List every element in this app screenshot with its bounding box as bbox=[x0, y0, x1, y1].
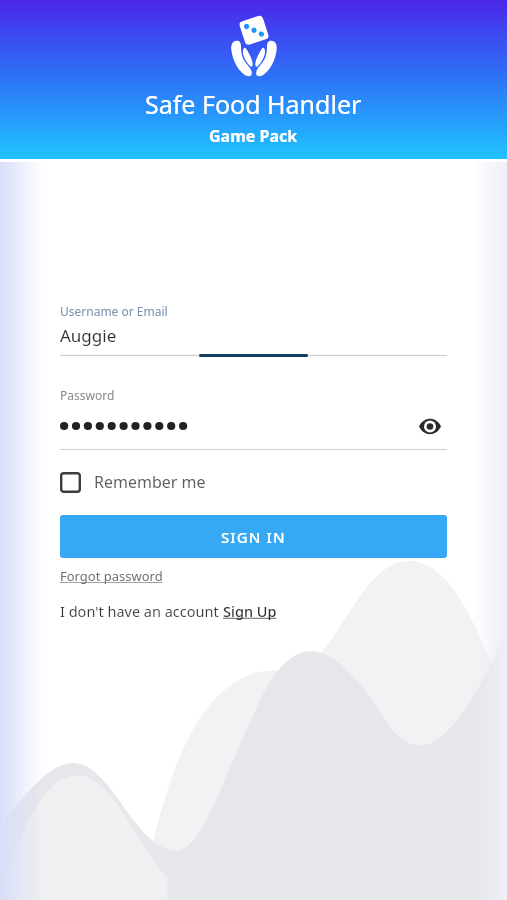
button[interactable]: Show password bbox=[413, 409, 447, 443]
staticText: Game Pack bbox=[209, 125, 298, 147]
staticText: SIGN IN bbox=[221, 527, 286, 547]
staticText: Sign Up bbox=[223, 601, 277, 621]
staticText: Auggie bbox=[60, 324, 117, 347]
button[interactable]: Forgot password bbox=[60, 567, 163, 585]
staticText: Remember me bbox=[94, 471, 206, 493]
staticText: Password bbox=[60, 387, 115, 403]
staticText: Safe Food Handler bbox=[145, 87, 362, 121]
staticText: Username or Email bbox=[60, 303, 168, 319]
staticText: Forgot password bbox=[60, 567, 163, 585]
button[interactable] bbox=[60, 416, 413, 436]
button[interactable]: Sign Up bbox=[223, 601, 277, 621]
button[interactable]: SIGN IN bbox=[60, 515, 447, 558]
staticText: I don't have an account bbox=[60, 601, 223, 621]
button[interactable]: Auggie bbox=[60, 324, 447, 347]
button[interactable]: Remember me bbox=[60, 471, 206, 493]
